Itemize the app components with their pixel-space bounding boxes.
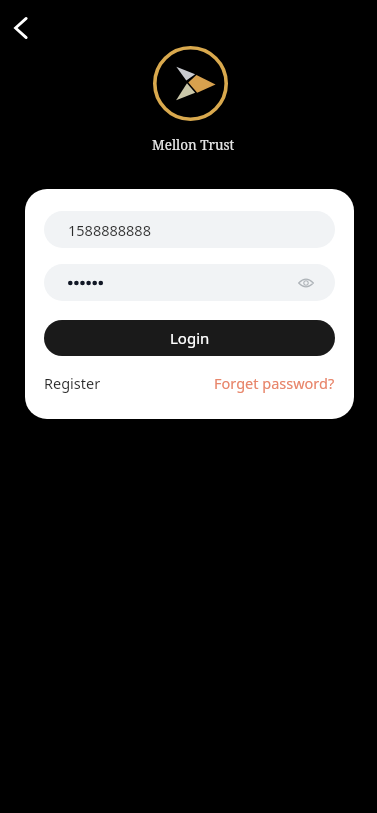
button[interactable]: Show password (44, 264, 335, 301)
staticText: Mellon Trust (152, 136, 235, 154)
staticText: 1588888888 (68, 220, 151, 240)
button[interactable]: 1588888888 (44, 211, 335, 248)
button[interactable]: Forget password? (214, 373, 335, 393)
button[interactable]: Login (44, 320, 335, 356)
staticText: Register (44, 373, 101, 393)
staticText: Forget password? (214, 373, 335, 393)
button[interactable]: Back (1, 8, 41, 48)
button[interactable]: Register (44, 373, 101, 393)
staticText: Login (170, 328, 210, 348)
button[interactable]: Show password (295, 272, 317, 294)
